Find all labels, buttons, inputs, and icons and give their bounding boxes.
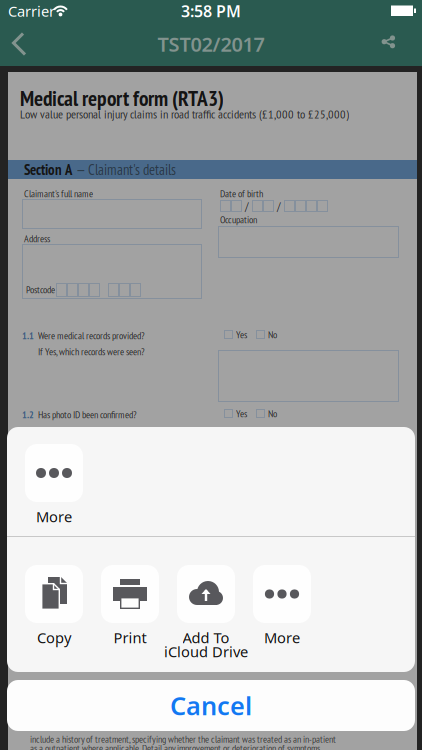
button[interactable]: Cancel: [7, 680, 415, 731]
staticText: More: [36, 507, 72, 526]
staticText: Yes: [236, 328, 247, 341]
staticText: Carrier: [8, 1, 55, 21]
staticText: /: [277, 198, 281, 214]
staticText: Were medical records provided?: [38, 329, 145, 342]
staticText: Claimant's full name: [24, 187, 93, 200]
staticText: Medical report form (RTA3): [20, 84, 224, 112]
button[interactable]: More: [253, 565, 311, 657]
staticText: Date of birth: [220, 187, 263, 200]
staticText: Address: [24, 232, 50, 245]
button[interactable]: Copy: [25, 565, 83, 657]
staticText: Add To: [182, 628, 229, 647]
staticText: Occupation: [220, 213, 257, 226]
staticText: Has photo ID been confirmed?: [38, 408, 137, 421]
staticText: Yes: [236, 407, 247, 420]
staticText: TST02/2017: [157, 31, 264, 57]
button[interactable]: Add To: [177, 565, 235, 657]
staticText: 1.2: [22, 408, 34, 421]
staticText: Postcode: [26, 283, 55, 296]
staticText: as a outpatient where applicable. Detail…: [30, 742, 320, 750]
staticText: Cancel: [170, 689, 252, 722]
staticText: Copy: [37, 628, 71, 647]
staticText: Print: [113, 628, 146, 647]
staticText: iCloud Drive: [164, 642, 248, 661]
button[interactable]: Print: [101, 565, 159, 657]
button[interactable]: More: [25, 444, 83, 536]
button[interactable]: Back: [10, 31, 28, 57]
button[interactable]: Share: [380, 32, 396, 52]
staticText: include a history of treatment, specifyi…: [30, 733, 336, 745]
staticText: /: [245, 198, 249, 214]
staticText: More: [264, 628, 300, 647]
staticText: Section A: [24, 160, 72, 179]
staticText: Low value personal injury claims in road…: [20, 106, 349, 122]
staticText: No: [268, 328, 277, 341]
staticText: — Claimant's details: [76, 160, 176, 179]
staticText: No: [268, 407, 277, 420]
staticText: 1.1: [22, 329, 34, 342]
staticText: 3:58 PM: [181, 0, 241, 22]
staticText: If Yes, which records were seen?: [38, 345, 145, 358]
